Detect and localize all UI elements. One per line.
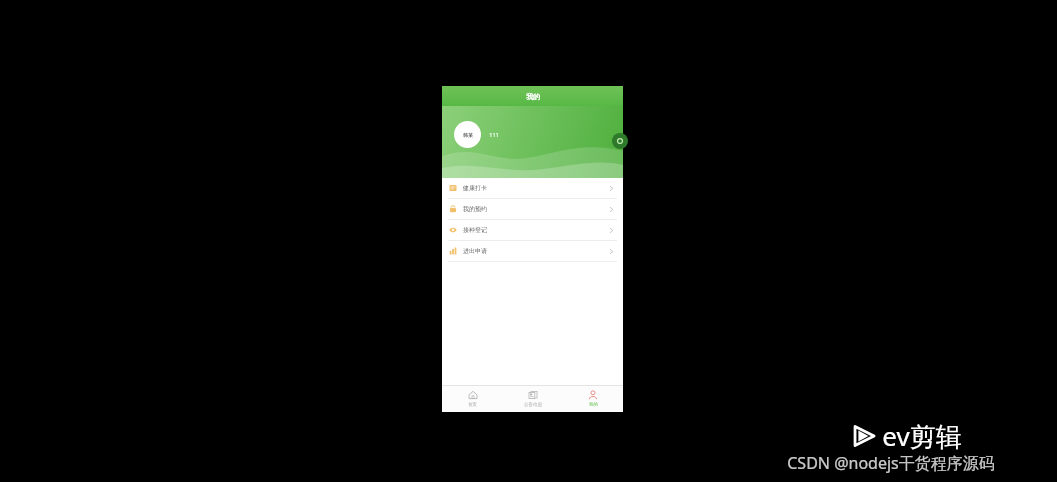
button[interactable]: 公告信息 (503, 386, 563, 412)
button[interactable]: 健康打卡 (442, 178, 623, 198)
button[interactable]: 韩某 (454, 121, 499, 148)
staticText: 111 (489, 131, 499, 138)
staticText: 我的 (526, 92, 540, 101)
staticText: CSDN @nodejs干货程序源码 (787, 452, 995, 474)
button[interactable]: 接种登记 (442, 220, 623, 240)
staticText: 我的 (589, 402, 598, 408)
staticText: 进出申请 (463, 247, 487, 255)
staticText: 首页 (468, 402, 477, 408)
button[interactable]: Settings (612, 133, 628, 149)
button[interactable]: 我的 (563, 386, 623, 412)
staticText: 接种登记 (463, 226, 487, 234)
button[interactable]: 首页 (442, 386, 503, 412)
staticText: 韩某 (463, 132, 473, 138)
staticText: 公告信息 (524, 402, 542, 408)
button[interactable]: 进出申请 (442, 241, 623, 261)
button[interactable]: 我的预约 (442, 199, 623, 219)
staticText: 健康打卡 (463, 184, 487, 192)
staticText: 我的预约 (463, 205, 487, 213)
staticText: ev剪辑 (882, 418, 962, 454)
